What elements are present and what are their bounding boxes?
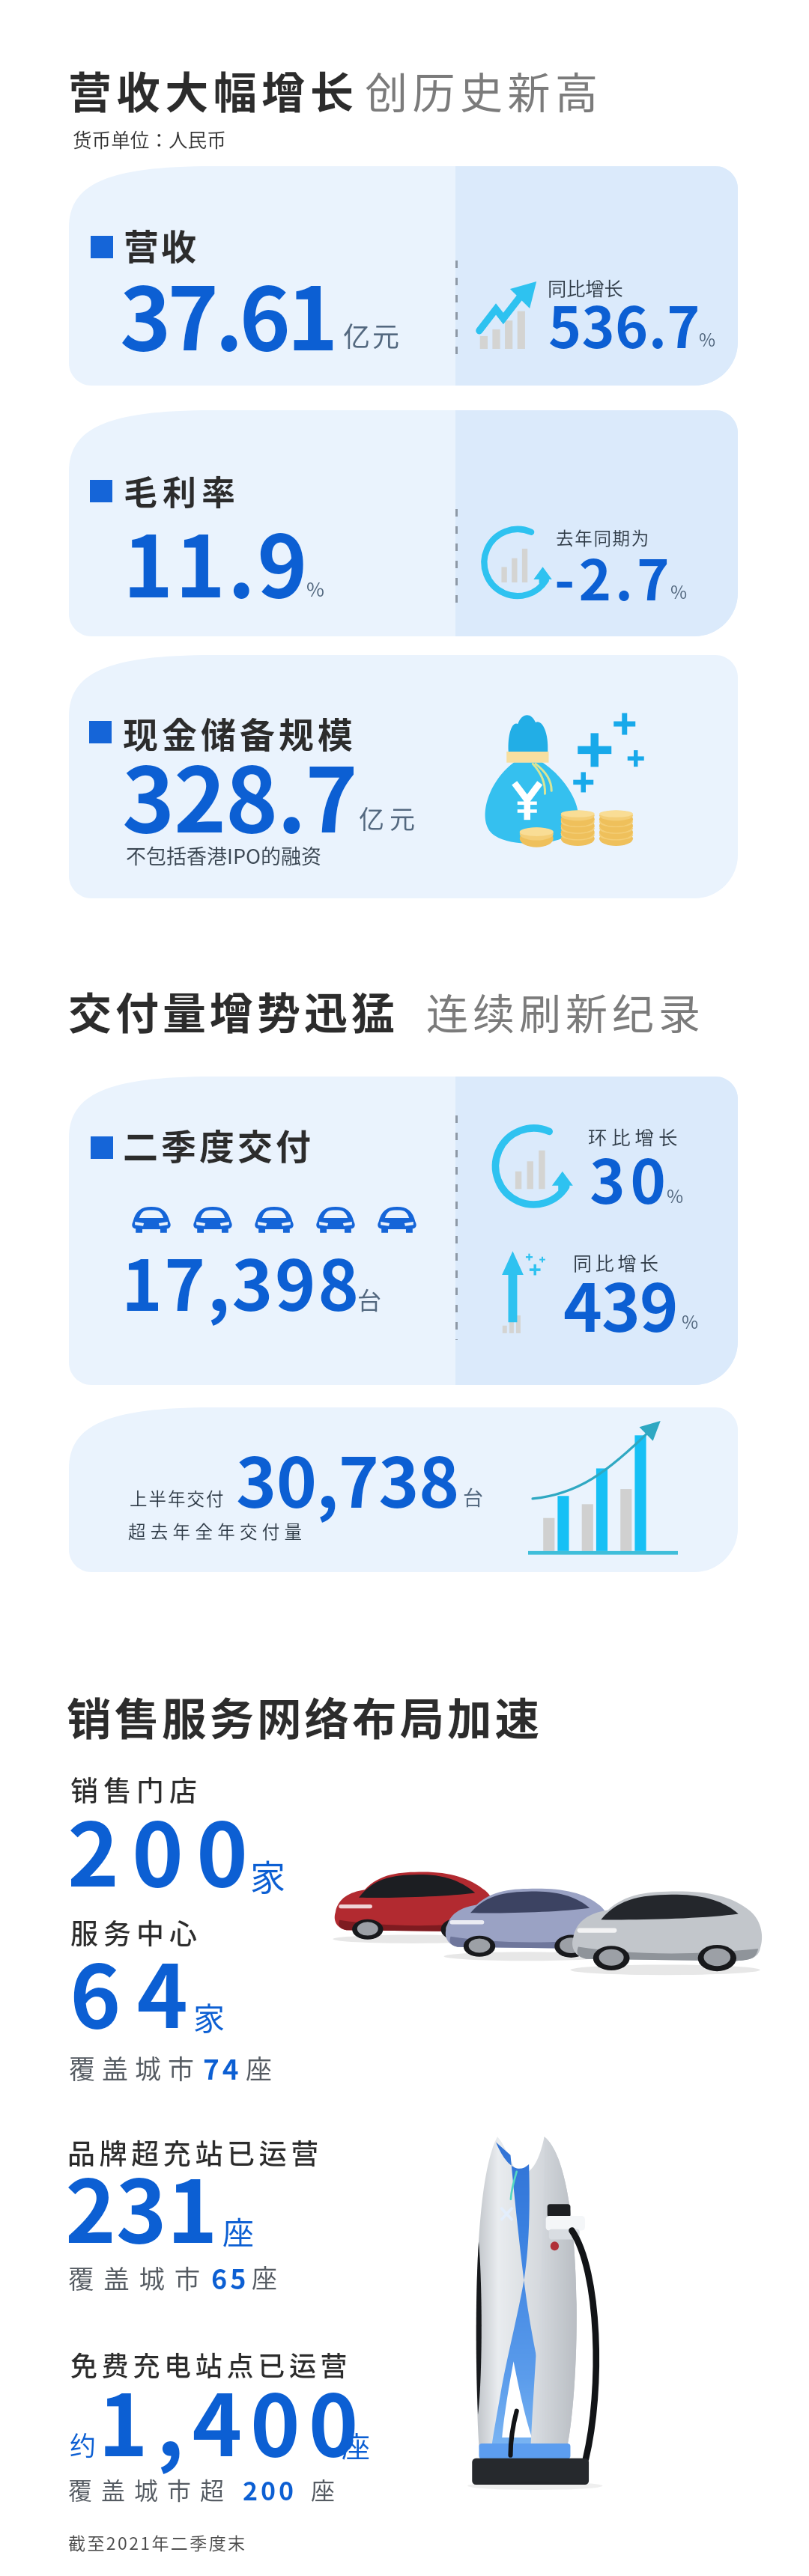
- staticText: 品牌超充站已运营: [67, 2132, 323, 2172]
- staticText: 同比增长: [548, 274, 623, 301]
- staticText: 17,398: [121, 1230, 361, 1331]
- staticText: 台: [357, 1282, 382, 1316]
- staticText: 截至2021年二季度末: [68, 2530, 247, 2554]
- other: 去年同期为图标: [481, 524, 554, 601]
- staticText: 座: [252, 2259, 277, 2295]
- staticText: 货币单位：人民币: [73, 125, 226, 153]
- button[interactable]: [69, 1077, 738, 1385]
- staticText: 连续刷新纪录: [424, 981, 703, 1041]
- staticText: 不包括香港IPO的融资: [126, 841, 322, 870]
- staticText: %: [667, 1182, 684, 1208]
- other: 环比增长图标: [491, 1124, 577, 1208]
- other: 车型图片: [330, 1864, 764, 1980]
- button[interactable]: [69, 1407, 738, 1572]
- staticText: 约: [70, 2425, 97, 2463]
- staticText: %: [682, 1308, 699, 1334]
- staticText: 覆盖城市: [69, 2048, 202, 2086]
- other: 同比增长图标: [476, 281, 537, 349]
- staticText: 同比增长: [573, 1249, 662, 1276]
- staticText: 座: [246, 2048, 273, 2086]
- staticText: 亿元: [359, 800, 420, 836]
- staticText: 免费充电站点已运营: [70, 2345, 352, 2384]
- staticText: 台: [463, 1482, 483, 1511]
- staticText: %: [670, 578, 688, 604]
- staticText: 座: [311, 2472, 336, 2506]
- button[interactable]: [69, 410, 738, 636]
- staticText: 11.9: [123, 499, 310, 622]
- other: 车辆: [193, 1205, 232, 1234]
- staticText: 覆盖城市超: [68, 2472, 234, 2506]
- staticText: -2.7: [554, 536, 673, 616]
- staticText: 环比增长: [588, 1122, 682, 1150]
- staticText: 1,400: [98, 2358, 367, 2481]
- staticText: %: [306, 574, 324, 603]
- staticText: 200: [243, 2471, 297, 2508]
- staticText: 亿元: [343, 315, 402, 354]
- staticText: 交付量增势迅猛: [68, 979, 399, 1042]
- staticText: 上半年交付: [130, 1485, 225, 1511]
- other: 车辆: [255, 1205, 294, 1234]
- staticText: 30,738: [236, 1428, 459, 1527]
- staticText: 二季度交付: [123, 1118, 314, 1169]
- staticText: 536.7: [548, 283, 700, 365]
- staticText: 营收: [124, 219, 199, 270]
- staticText: 覆 盖 城 市: [68, 2259, 202, 2296]
- other: 增长图表: [528, 1421, 679, 1559]
- staticText: 座: [342, 2424, 371, 2465]
- other: 同比增长图标: [500, 1249, 553, 1334]
- staticText: 37.61: [120, 249, 335, 375]
- other: 超级充电桩图片: [464, 2120, 618, 2488]
- staticText: 74: [203, 2047, 242, 2088]
- staticText: 营收大幅增长: [68, 58, 359, 121]
- staticText: 销售服务网络布局加速: [67, 1684, 542, 1748]
- other: 车辆: [378, 1205, 416, 1234]
- staticText: 销售门店: [70, 1769, 202, 1809]
- staticText: %: [699, 326, 716, 352]
- staticText: 200: [67, 1785, 261, 1911]
- staticText: 毛利率: [124, 466, 241, 515]
- staticText: 超去年全年交付量: [128, 1518, 307, 1544]
- staticText: 去年同期为: [556, 525, 650, 550]
- staticText: 座: [222, 2208, 255, 2253]
- button[interactable]: [69, 166, 738, 386]
- staticText: 家: [250, 1849, 285, 1900]
- other: 车辆: [316, 1205, 355, 1234]
- staticText: 231: [65, 2143, 218, 2268]
- staticText: 65: [211, 2258, 249, 2297]
- staticText: 328.7: [122, 729, 357, 858]
- staticText: 服务中心: [70, 1912, 202, 1952]
- staticText: 439: [563, 1255, 678, 1351]
- other: 车辆: [132, 1205, 171, 1234]
- staticText: 创历史新高: [365, 59, 603, 121]
- staticText: 现金储备规模: [123, 707, 357, 758]
- button[interactable]: [69, 655, 738, 898]
- other: 现金储备图标: [479, 692, 667, 846]
- staticText: 64: [70, 1927, 204, 2053]
- staticText: 30: [590, 1133, 671, 1221]
- staticText: 家: [193, 1994, 225, 2039]
